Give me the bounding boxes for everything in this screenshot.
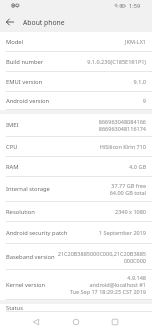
staticText: Baseband version bbox=[6, 253, 55, 261]
staticText: 64.00 GB total bbox=[109, 189, 146, 196]
staticText: EMUI version bbox=[6, 78, 43, 86]
staticText: 37.77 GB free bbox=[111, 182, 146, 189]
staticText: 000C000 bbox=[123, 257, 146, 264]
staticText: Status bbox=[6, 304, 23, 311]
staticText: Resolution bbox=[6, 208, 35, 216]
button[interactable]: Model bbox=[0, 32, 152, 52]
staticText: 2340 x 1080 bbox=[115, 208, 146, 215]
staticText: JKM-LX1 bbox=[125, 38, 146, 45]
staticText: 21C20B3885000C000,21C20B3885 bbox=[57, 250, 146, 257]
staticText: 1 September 2019 bbox=[98, 229, 146, 236]
button[interactable]: Android version bbox=[0, 92, 152, 110]
button[interactable]: Baseband version bbox=[0, 244, 152, 270]
staticText: 866963048084166 bbox=[98, 118, 146, 125]
staticText: 9.1.0.230(C185E1R1P1) bbox=[87, 58, 146, 65]
button[interactable]: CPU bbox=[0, 137, 152, 157]
button[interactable]: Android security patch bbox=[0, 222, 152, 244]
staticText: 9 bbox=[142, 97, 146, 104]
button[interactable]: Home bbox=[68, 314, 84, 330]
staticText: Build number bbox=[6, 58, 44, 66]
staticText: Kernel version bbox=[6, 281, 46, 289]
staticText: Android security patch bbox=[6, 229, 68, 237]
button[interactable]: IMEI bbox=[0, 114, 152, 137]
staticText: 9.1.0 bbox=[133, 78, 146, 85]
button[interactable]: Back bbox=[0, 12, 20, 32]
button[interactable]: Back bbox=[28, 314, 44, 330]
button[interactable]: RAM bbox=[0, 157, 152, 177]
button[interactable]: Internal storage bbox=[0, 177, 152, 202]
button[interactable]: EMUI version bbox=[0, 72, 152, 92]
staticText: CPU bbox=[6, 143, 18, 151]
button[interactable]: Build number bbox=[0, 52, 152, 72]
staticText: IMEI bbox=[6, 121, 19, 129]
staticText: HiSilicon Kirin 710 bbox=[99, 143, 146, 150]
button[interactable]: Resolution bbox=[0, 202, 152, 222]
staticText: RAM bbox=[6, 163, 19, 171]
staticText: 4.9.148 bbox=[127, 274, 146, 281]
staticText: Android version bbox=[6, 97, 50, 105]
staticText: Internal storage bbox=[6, 185, 50, 193]
staticText: About phone bbox=[23, 18, 65, 27]
staticText: Model bbox=[6, 38, 24, 46]
staticText: android@localhost #1 bbox=[89, 281, 146, 288]
staticText: 866963048116174 bbox=[98, 125, 146, 132]
staticText: 4.0 GB bbox=[129, 163, 146, 170]
button[interactable]: Kernel version bbox=[0, 270, 152, 300]
button[interactable]: Status bbox=[0, 304, 152, 312]
staticText: 1:59 bbox=[129, 2, 141, 10]
staticText: Tue Sep 17 18:29:23 CST 2019 bbox=[69, 288, 146, 295]
button[interactable]: Recents bbox=[107, 314, 123, 330]
